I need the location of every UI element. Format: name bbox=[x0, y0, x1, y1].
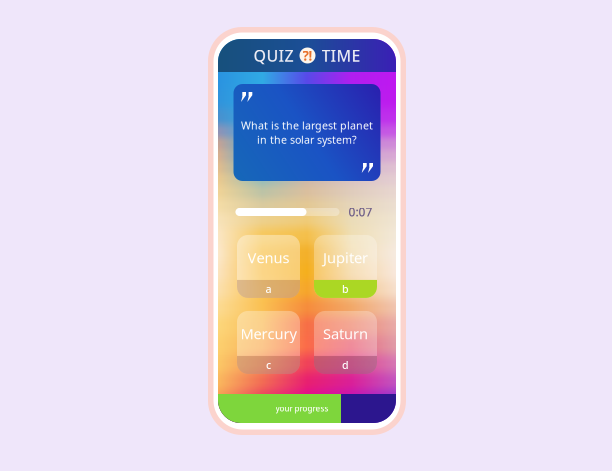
button[interactable]: your progress bbox=[218, 394, 396, 423]
staticText: Mercury bbox=[240, 324, 296, 343]
staticText: TIME bbox=[321, 45, 360, 66]
staticText: d bbox=[342, 358, 349, 372]
button[interactable]: Saturn bbox=[314, 311, 377, 374]
staticText: QUIZ bbox=[253, 45, 293, 66]
staticText: your progress bbox=[275, 403, 328, 414]
staticText: 0:07 bbox=[348, 204, 372, 220]
button[interactable]: Mercury bbox=[237, 311, 300, 374]
staticText: c bbox=[266, 358, 271, 372]
button[interactable]: Jupiter bbox=[314, 235, 377, 298]
staticText: in the solar system? bbox=[257, 132, 357, 147]
staticText: ?! bbox=[302, 47, 312, 64]
button[interactable]: Venus bbox=[237, 235, 300, 298]
staticText: What is the largest planet bbox=[241, 118, 373, 132]
staticText: Jupiter bbox=[323, 248, 368, 267]
staticText: Venus bbox=[247, 248, 289, 267]
staticText: a bbox=[265, 282, 271, 296]
staticText: b bbox=[342, 282, 349, 296]
staticText: Saturn bbox=[323, 324, 368, 343]
